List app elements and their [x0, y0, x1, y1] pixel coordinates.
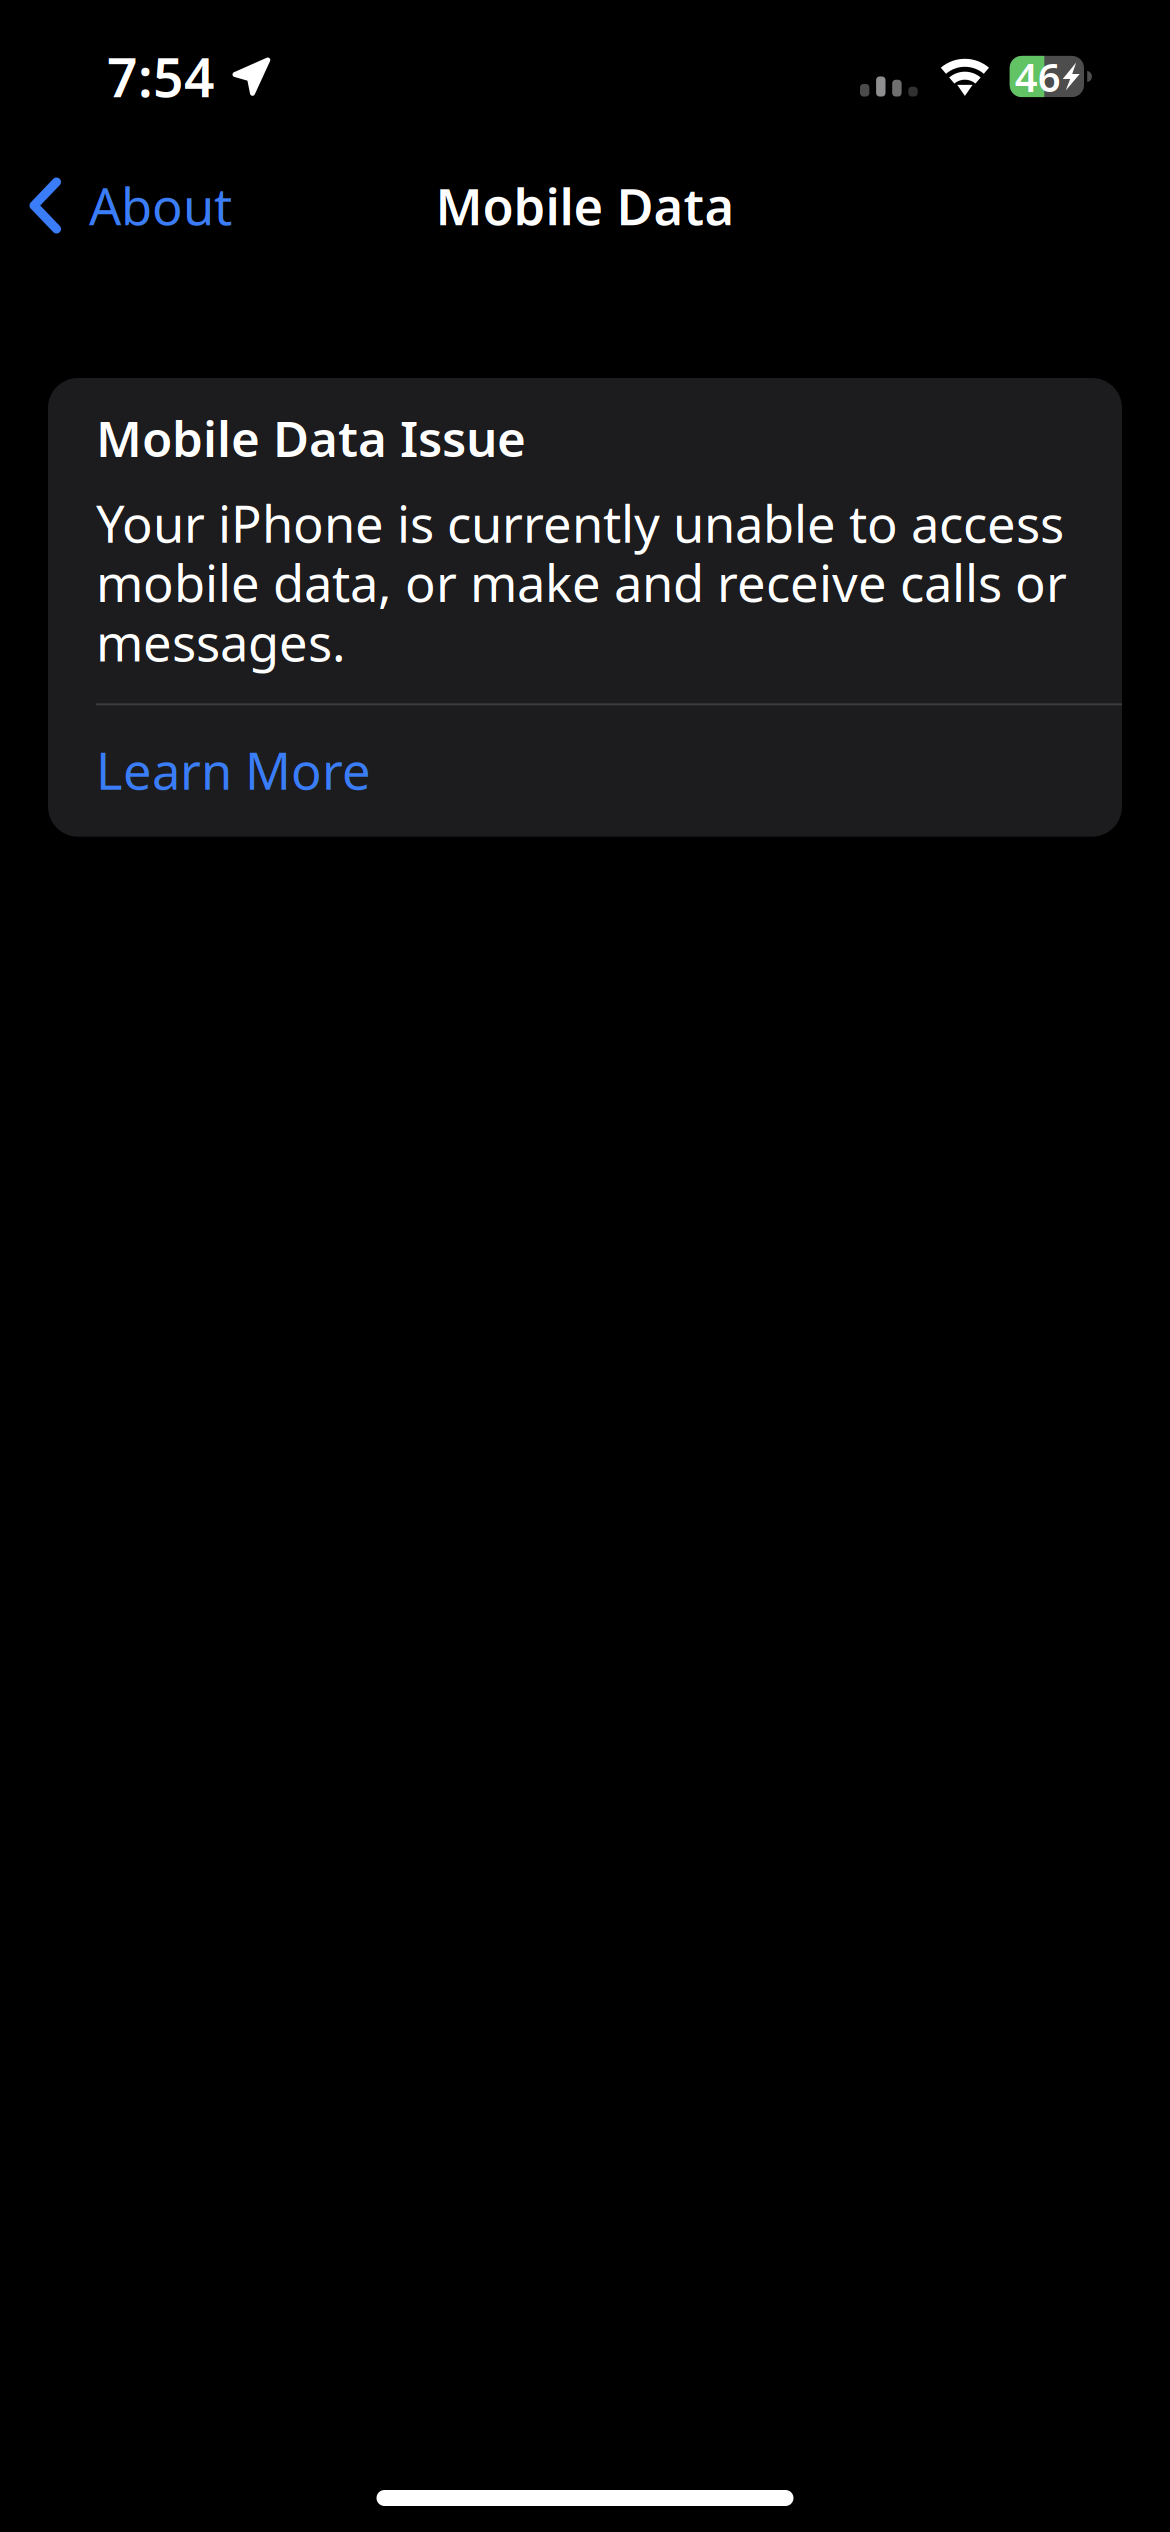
button[interactable]: Back to About	[0, 158, 256, 253]
staticText: About	[89, 172, 232, 239]
staticText: Your iPhone is currently unable to acces…	[96, 489, 1067, 675]
staticText: Learn More	[96, 736, 371, 804]
staticText: Mobile Data Issue	[96, 405, 526, 470]
staticText: 46	[1015, 50, 1061, 103]
staticText: 7:54	[107, 41, 215, 112]
staticText: Mobile Data	[435, 172, 734, 239]
button[interactable]: Learn More	[96, 705, 1074, 837]
